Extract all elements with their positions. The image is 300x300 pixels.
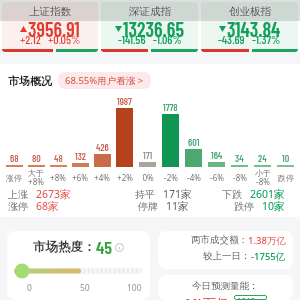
staticText: 10家	[262, 199, 285, 213]
staticText: +4%	[94, 174, 110, 183]
staticText: 3143.84	[227, 17, 281, 41]
staticText: 34	[235, 152, 244, 164]
staticText: 涨停	[6, 174, 22, 183]
staticText: 1.38万亿	[248, 234, 286, 247]
staticText: -4%	[187, 174, 201, 183]
staticText: 跌停	[278, 174, 294, 183]
staticText: 2.14万亿	[185, 295, 229, 300]
staticText: 426	[96, 141, 109, 153]
staticText: 大于 +8%	[28, 169, 44, 187]
staticText: 跌停	[234, 200, 254, 213]
staticText: 2673家	[36, 187, 71, 201]
staticText: 下跌	[222, 188, 242, 201]
button[interactable]: 上证指数	[2, 2, 98, 52]
staticText: 50	[80, 282, 90, 294]
staticText: 171家	[163, 187, 192, 201]
staticText: -2%	[164, 174, 178, 183]
staticText: -1755亿	[251, 250, 286, 263]
button[interactable]: 市场热度：	[7, 231, 150, 300]
staticText: +2.12	[20, 32, 41, 46]
staticText: 3956.91	[28, 17, 80, 41]
button[interactable]: 两市成交额：	[158, 231, 293, 269]
staticText: +6%	[72, 174, 88, 183]
staticText: 上证指数	[29, 5, 71, 17]
staticText: 涨停	[8, 200, 28, 213]
staticText: +8%	[50, 174, 66, 183]
staticText: 1987	[117, 95, 132, 107]
staticText: 68家	[36, 199, 59, 213]
staticText: 0%	[142, 174, 154, 183]
staticText: 48	[54, 152, 63, 164]
staticText: 1778	[163, 101, 178, 113]
button[interactable]: 深证成指	[101, 2, 198, 52]
staticText: 45	[96, 236, 112, 258]
staticText: 深证成指	[129, 5, 171, 17]
staticText: +0.05%	[48, 32, 81, 46]
staticText: -6%	[210, 174, 224, 183]
staticText: 13236.65	[123, 17, 184, 41]
staticText: 80	[32, 152, 41, 164]
staticText: 停牌	[138, 200, 158, 213]
staticText: 68	[10, 152, 19, 164]
staticText: 今日预测量能：	[192, 280, 259, 292]
staticText: 市场概况	[8, 74, 52, 88]
staticText: 100	[127, 282, 142, 294]
staticText: -1.06%	[153, 32, 182, 46]
staticText: 持平	[135, 188, 155, 201]
staticText: 164	[211, 149, 223, 161]
staticText: 11家	[166, 199, 189, 213]
button[interactable]: 今日预测量能：	[158, 275, 293, 300]
staticText: 2601家	[250, 187, 285, 201]
staticText: 601	[188, 136, 200, 148]
staticText: 0	[27, 282, 32, 294]
staticText: 创业板指	[229, 5, 271, 17]
staticText: -141.56	[118, 32, 146, 46]
button[interactable]: 创业板指	[201, 2, 298, 52]
staticText: 两市成交额：	[191, 234, 248, 246]
staticText: -1.37%	[252, 32, 281, 46]
staticText: 市场热度：	[33, 239, 96, 255]
staticText: 上涨	[8, 188, 28, 201]
staticText: 132	[75, 150, 86, 162]
staticText: 24	[258, 152, 267, 164]
staticText: +2%	[117, 174, 133, 183]
staticText: 小于 -8%	[255, 169, 271, 187]
staticText: 10	[282, 152, 290, 164]
staticText: -43.69	[218, 32, 245, 46]
staticText: 1012亿	[237, 296, 264, 299]
staticText: -8%	[233, 174, 247, 183]
button[interactable]: 68.55%用户看涨 >	[58, 72, 151, 89]
staticText: 68.55%用户看涨 >	[65, 74, 144, 87]
staticText: 171	[143, 149, 153, 161]
staticText: 较上一日：	[203, 250, 251, 262]
